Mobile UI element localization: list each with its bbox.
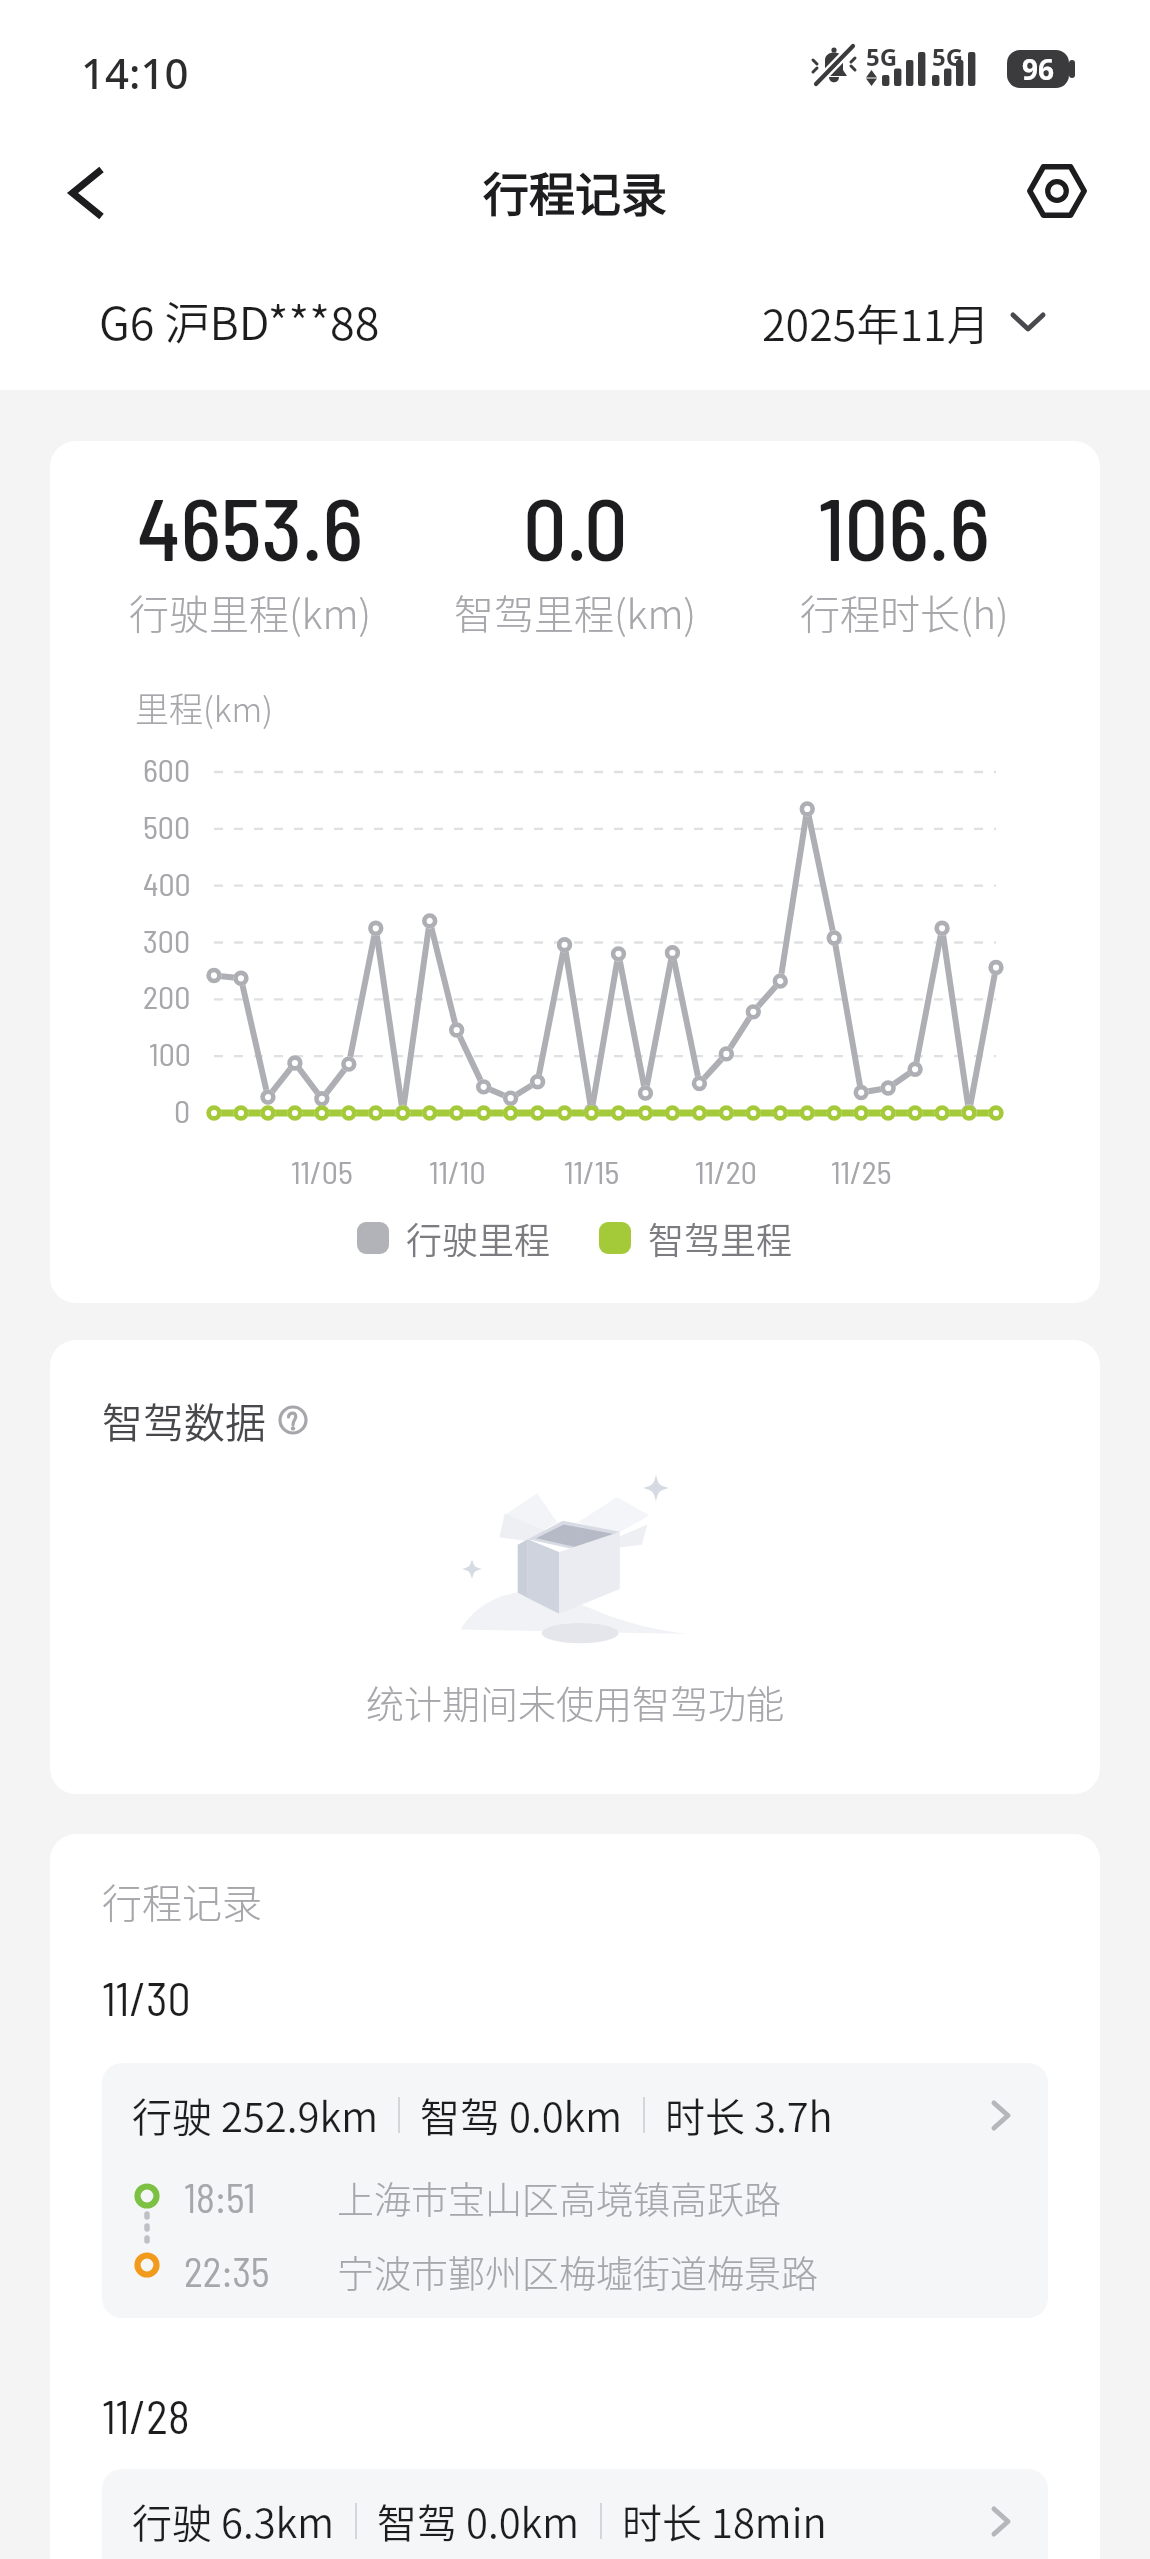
staticText: 行程记录 [483, 158, 667, 225]
button[interactable]: 行驶 252.9km [102, 2063, 1048, 2318]
staticText: 200 [143, 977, 191, 1015]
staticText: 18:51 [184, 2173, 256, 2221]
staticText: 22:35 [184, 2247, 270, 2295]
staticText: 2025年11月 [762, 291, 990, 353]
staticText: 智驾 0.0km [377, 2492, 580, 2550]
staticText: 智驾数据 [102, 1390, 266, 1449]
staticText: 里程(km) [135, 683, 273, 732]
staticText: 行驶里程(km) [129, 583, 372, 641]
staticText: 100 [149, 1034, 191, 1072]
staticText: 智驾里程(km) [454, 583, 697, 641]
staticText: 统计期间未使用智驾功能 [50, 1674, 1100, 1729]
staticText: 600 [143, 750, 191, 788]
staticText: 11/15 [564, 1152, 620, 1190]
staticText: 行驶 252.9km [132, 2086, 378, 2144]
staticText: 智驾 0.0km [420, 2086, 623, 2144]
button[interactable]: 2025年11月 [756, 285, 1052, 359]
staticText: 11/30 [102, 1970, 191, 2025]
staticText: 11/28 [102, 2388, 190, 2443]
staticText: 0 [174, 1091, 191, 1129]
staticText: 智驾里程 [648, 1212, 793, 1264]
staticText: 96 [1022, 50, 1055, 88]
staticText: 5G [866, 40, 898, 73]
staticText: 11/05 [291, 1152, 353, 1190]
staticText: 0.0 [523, 475, 628, 578]
staticText: 400 [143, 864, 191, 902]
staticText: 4653.6 [137, 475, 364, 578]
staticText: 14:10 [81, 44, 189, 101]
staticText: 时长 3.7h [665, 2086, 833, 2144]
staticText: 300 [143, 921, 191, 959]
staticText: 行程时长(h) [800, 583, 1009, 641]
staticText: 500 [143, 807, 191, 845]
staticText: 11/10 [429, 1152, 486, 1190]
staticText: 宁波市鄞州区梅墟街道梅景路 [337, 2245, 818, 2299]
staticText: G6 沪BD***88 [99, 288, 380, 353]
staticText: 11/25 [831, 1152, 892, 1190]
staticText: 行驶 6.3km [132, 2492, 335, 2550]
staticText: 11/20 [695, 1152, 757, 1190]
staticText: 时长 18min [622, 2492, 827, 2550]
staticText: 行驶里程 [406, 1212, 551, 1264]
staticText: 5G [932, 40, 964, 73]
staticText: 行程记录 [102, 1872, 262, 1930]
staticText: 106.6 [818, 475, 990, 578]
button[interactable]: 行驶 6.3km [102, 2469, 1048, 2559]
staticText: 上海市宝山区高境镇高跃路 [337, 2171, 781, 2225]
button[interactable]: Back [26, 133, 146, 253]
button[interactable]: Settings [997, 131, 1117, 251]
